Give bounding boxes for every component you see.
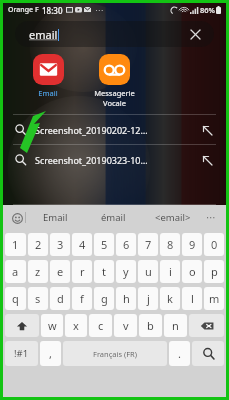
staticText: 0 xyxy=(211,237,218,252)
staticText: s xyxy=(35,291,41,306)
staticText: h xyxy=(123,291,130,306)
staticText: m xyxy=(209,291,220,306)
staticText: p xyxy=(211,264,218,279)
staticText: f xyxy=(80,291,84,306)
staticText: 6 xyxy=(123,237,130,252)
staticText: z xyxy=(35,264,41,279)
button[interactable]: 1 xyxy=(5,233,26,256)
button[interactable]: 8 xyxy=(160,233,180,256)
staticText: n xyxy=(172,318,179,333)
button[interactable]: l xyxy=(182,287,202,310)
staticText: g xyxy=(101,291,108,306)
button[interactable]: Shift xyxy=(5,314,39,337)
button[interactable]: q xyxy=(5,287,26,310)
button[interactable]: <email> xyxy=(143,205,202,230)
staticText: émail xyxy=(101,211,126,224)
button[interactable]: 4 xyxy=(72,233,92,256)
button[interactable]: r xyxy=(72,260,92,283)
button[interactable]: z xyxy=(28,260,48,283)
button[interactable]: Messagerie xyxy=(85,54,143,108)
button[interactable]: a xyxy=(5,260,26,283)
button[interactable]: Backspace xyxy=(189,314,224,337)
button[interactable]: 0 xyxy=(204,233,224,256)
staticText: e xyxy=(57,264,64,279)
button[interactable]: 9 xyxy=(182,233,202,256)
button[interactable]: v xyxy=(114,314,137,337)
button[interactable]: g xyxy=(94,287,114,310)
button[interactable]: Insert suggestion xyxy=(200,153,214,167)
staticText: u xyxy=(145,264,152,279)
button[interactable]: p xyxy=(204,260,224,283)
button[interactable]: Emoji xyxy=(9,210,25,226)
button[interactable]: i xyxy=(160,260,180,283)
button[interactable]: Screenshot_20190323-10… xyxy=(3,145,226,174)
button[interactable]: Screenshot_20190202-12… xyxy=(3,115,226,144)
button[interactable]: s xyxy=(28,287,48,310)
staticText: v xyxy=(123,318,129,333)
staticText: Email xyxy=(38,88,58,98)
staticText: t xyxy=(102,264,106,279)
staticText: 9 xyxy=(189,237,196,252)
button[interactable]: émail xyxy=(84,205,143,230)
button[interactable]: !#1 xyxy=(5,341,38,366)
button[interactable]: c xyxy=(89,314,112,337)
button[interactable]: j xyxy=(138,287,158,310)
staticText: Messagerie xyxy=(94,88,135,98)
button[interactable]: 3 xyxy=(50,233,70,256)
staticText: 4 xyxy=(79,237,86,252)
staticText: x xyxy=(73,318,79,333)
button[interactable]: Français (FR) xyxy=(63,341,167,366)
staticText: 2 xyxy=(35,237,42,252)
staticText: 7 xyxy=(145,237,152,252)
button[interactable]: d xyxy=(50,287,70,310)
button[interactable]: x xyxy=(65,314,87,337)
button[interactable]: Search xyxy=(192,341,224,366)
button[interactable]: y xyxy=(116,260,136,283)
staticText: 18:30 xyxy=(42,5,63,16)
button[interactable]: Email xyxy=(26,205,84,230)
button[interactable]: o xyxy=(182,260,202,283)
staticText: r xyxy=(80,264,85,279)
button[interactable]: 2 xyxy=(28,233,48,256)
staticText: i xyxy=(169,264,172,279)
staticText: 5 xyxy=(101,237,108,252)
button[interactable]: Clear search xyxy=(186,25,204,43)
staticText: email xyxy=(29,27,58,42)
staticText: Orange F xyxy=(8,5,39,15)
staticText: ⋯ xyxy=(95,6,103,15)
staticText: c xyxy=(98,318,104,333)
button[interactable]: t xyxy=(94,260,114,283)
staticText: a xyxy=(12,264,19,279)
staticText: . xyxy=(178,346,181,361)
staticText: q xyxy=(12,291,19,306)
button[interactable]: 5 xyxy=(94,233,114,256)
staticText: w xyxy=(48,318,57,333)
staticText: Screenshot_20190202-12… xyxy=(35,124,148,136)
staticText: Email xyxy=(43,211,68,224)
button[interactable]: 6 xyxy=(116,233,136,256)
button[interactable]: email xyxy=(15,21,214,47)
button[interactable]: w xyxy=(41,314,63,337)
button[interactable]: m xyxy=(204,287,224,310)
staticText: d xyxy=(57,291,64,306)
staticText: o xyxy=(189,264,196,279)
button[interactable]: . xyxy=(169,341,190,366)
button[interactable]: More suggestions xyxy=(202,205,220,230)
staticText: b xyxy=(147,318,154,333)
button[interactable]: h xyxy=(116,287,136,310)
staticText: 3 xyxy=(57,237,64,252)
button[interactable]: 7 xyxy=(138,233,158,256)
button[interactable]: u xyxy=(138,260,158,283)
staticText: Screenshot_20190323-10… xyxy=(35,154,148,166)
button[interactable]: b xyxy=(139,314,162,337)
button[interactable]: k xyxy=(160,287,180,310)
button[interactable]: f xyxy=(72,287,92,310)
staticText: ⋯ xyxy=(206,212,216,224)
staticText: Français (FR) xyxy=(93,349,138,359)
staticText: y xyxy=(123,264,129,279)
button[interactable]: e xyxy=(50,260,70,283)
button[interactable]: n xyxy=(164,314,187,337)
button[interactable]: , xyxy=(40,341,61,366)
button[interactable]: Email xyxy=(19,54,77,98)
button[interactable]: Insert suggestion xyxy=(200,123,214,137)
